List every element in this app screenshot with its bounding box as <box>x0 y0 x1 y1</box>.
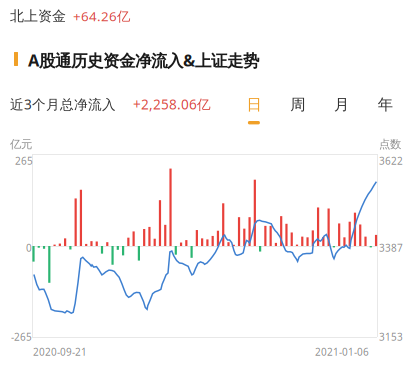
staticText: 点数 <box>379 137 401 151</box>
staticText: 近3个月总净流入 <box>10 95 116 113</box>
staticText: 3622 <box>379 154 403 168</box>
staticText: -265 <box>11 330 32 344</box>
button[interactable]: 年 <box>363 91 407 127</box>
button[interactable]: 月 <box>320 91 363 127</box>
staticText: 265 <box>15 154 33 168</box>
staticText: 2021-01-06 <box>315 345 369 359</box>
staticText: 年 <box>378 95 393 114</box>
staticText: +2,258.06亿 <box>133 95 211 113</box>
staticText: +64.26亿 <box>73 7 130 25</box>
staticText: 3153 <box>379 330 403 344</box>
staticText: 2020-09-21 <box>33 345 87 359</box>
staticText: 3387 <box>379 241 403 255</box>
staticText: 0 <box>26 241 32 255</box>
staticText: 周 <box>290 95 305 114</box>
button[interactable]: 周 <box>276 91 320 127</box>
staticText: 日 <box>246 95 261 114</box>
staticText: 月 <box>334 95 349 114</box>
staticText: 北上资金 <box>10 7 66 25</box>
staticText: 亿元 <box>10 137 32 151</box>
button[interactable]: 日 <box>232 91 276 127</box>
staticText: A股通历史资金净流入&上证走势 <box>28 49 259 71</box>
